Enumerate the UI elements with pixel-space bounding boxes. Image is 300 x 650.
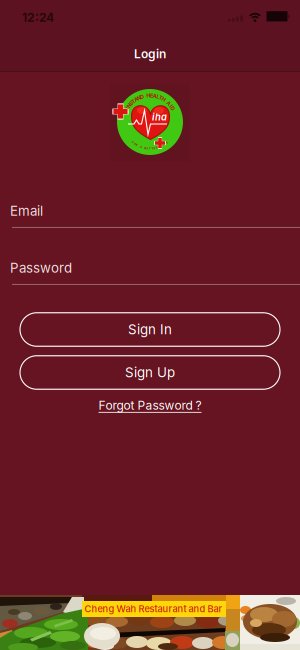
staticText: N [137,95,141,101]
staticText: Email [10,203,43,219]
staticText: I [163,143,164,146]
staticText: E [166,141,168,144]
staticText: Forgot Password ? [98,398,201,413]
button[interactable]: Sign Up [20,356,280,389]
button[interactable]: Forgot Password ? [98,398,201,413]
staticText: Password [10,260,72,276]
staticText: iha [152,111,167,122]
staticText: A [153,93,157,99]
staticText: D [171,105,175,111]
staticText: E [154,146,156,150]
staticText: N [127,103,131,109]
staticText: T [151,147,153,150]
staticText: R [156,146,158,149]
staticText: E [150,92,153,99]
staticText: T [159,95,163,101]
staticText: E [147,147,149,150]
staticText: H [146,92,150,99]
staticText: F [164,142,166,145]
staticText: I [170,103,171,109]
staticText: T [132,98,136,104]
staticText: A [134,96,138,102]
button[interactable]: Email [0,203,300,228]
staticText: D [140,94,144,100]
staticText: O [134,142,136,145]
staticText: I [127,105,128,111]
staticText: S [130,100,133,106]
staticText: B [144,146,146,150]
staticText: A [167,100,171,106]
staticText: T [149,147,151,150]
staticText: Sign Up [125,365,175,380]
button[interactable]: Password [0,260,300,285]
staticText: R [136,143,138,146]
staticText: Cheng Wah Restaurant and Bar [84,603,222,614]
staticText: A [140,145,142,148]
staticText: Login [134,47,166,61]
staticText: H [162,96,166,102]
staticText: 12:24 [22,10,54,25]
staticText: Sign In [128,322,172,337]
staticText [166,98,167,104]
button[interactable]: Cheng Wah Restaurant and Bar advertiseme… [0,595,300,650]
staticText: L [156,94,159,100]
staticText: L [160,144,162,147]
staticText: F [132,141,134,144]
button[interactable]: Sign In [20,313,280,346]
